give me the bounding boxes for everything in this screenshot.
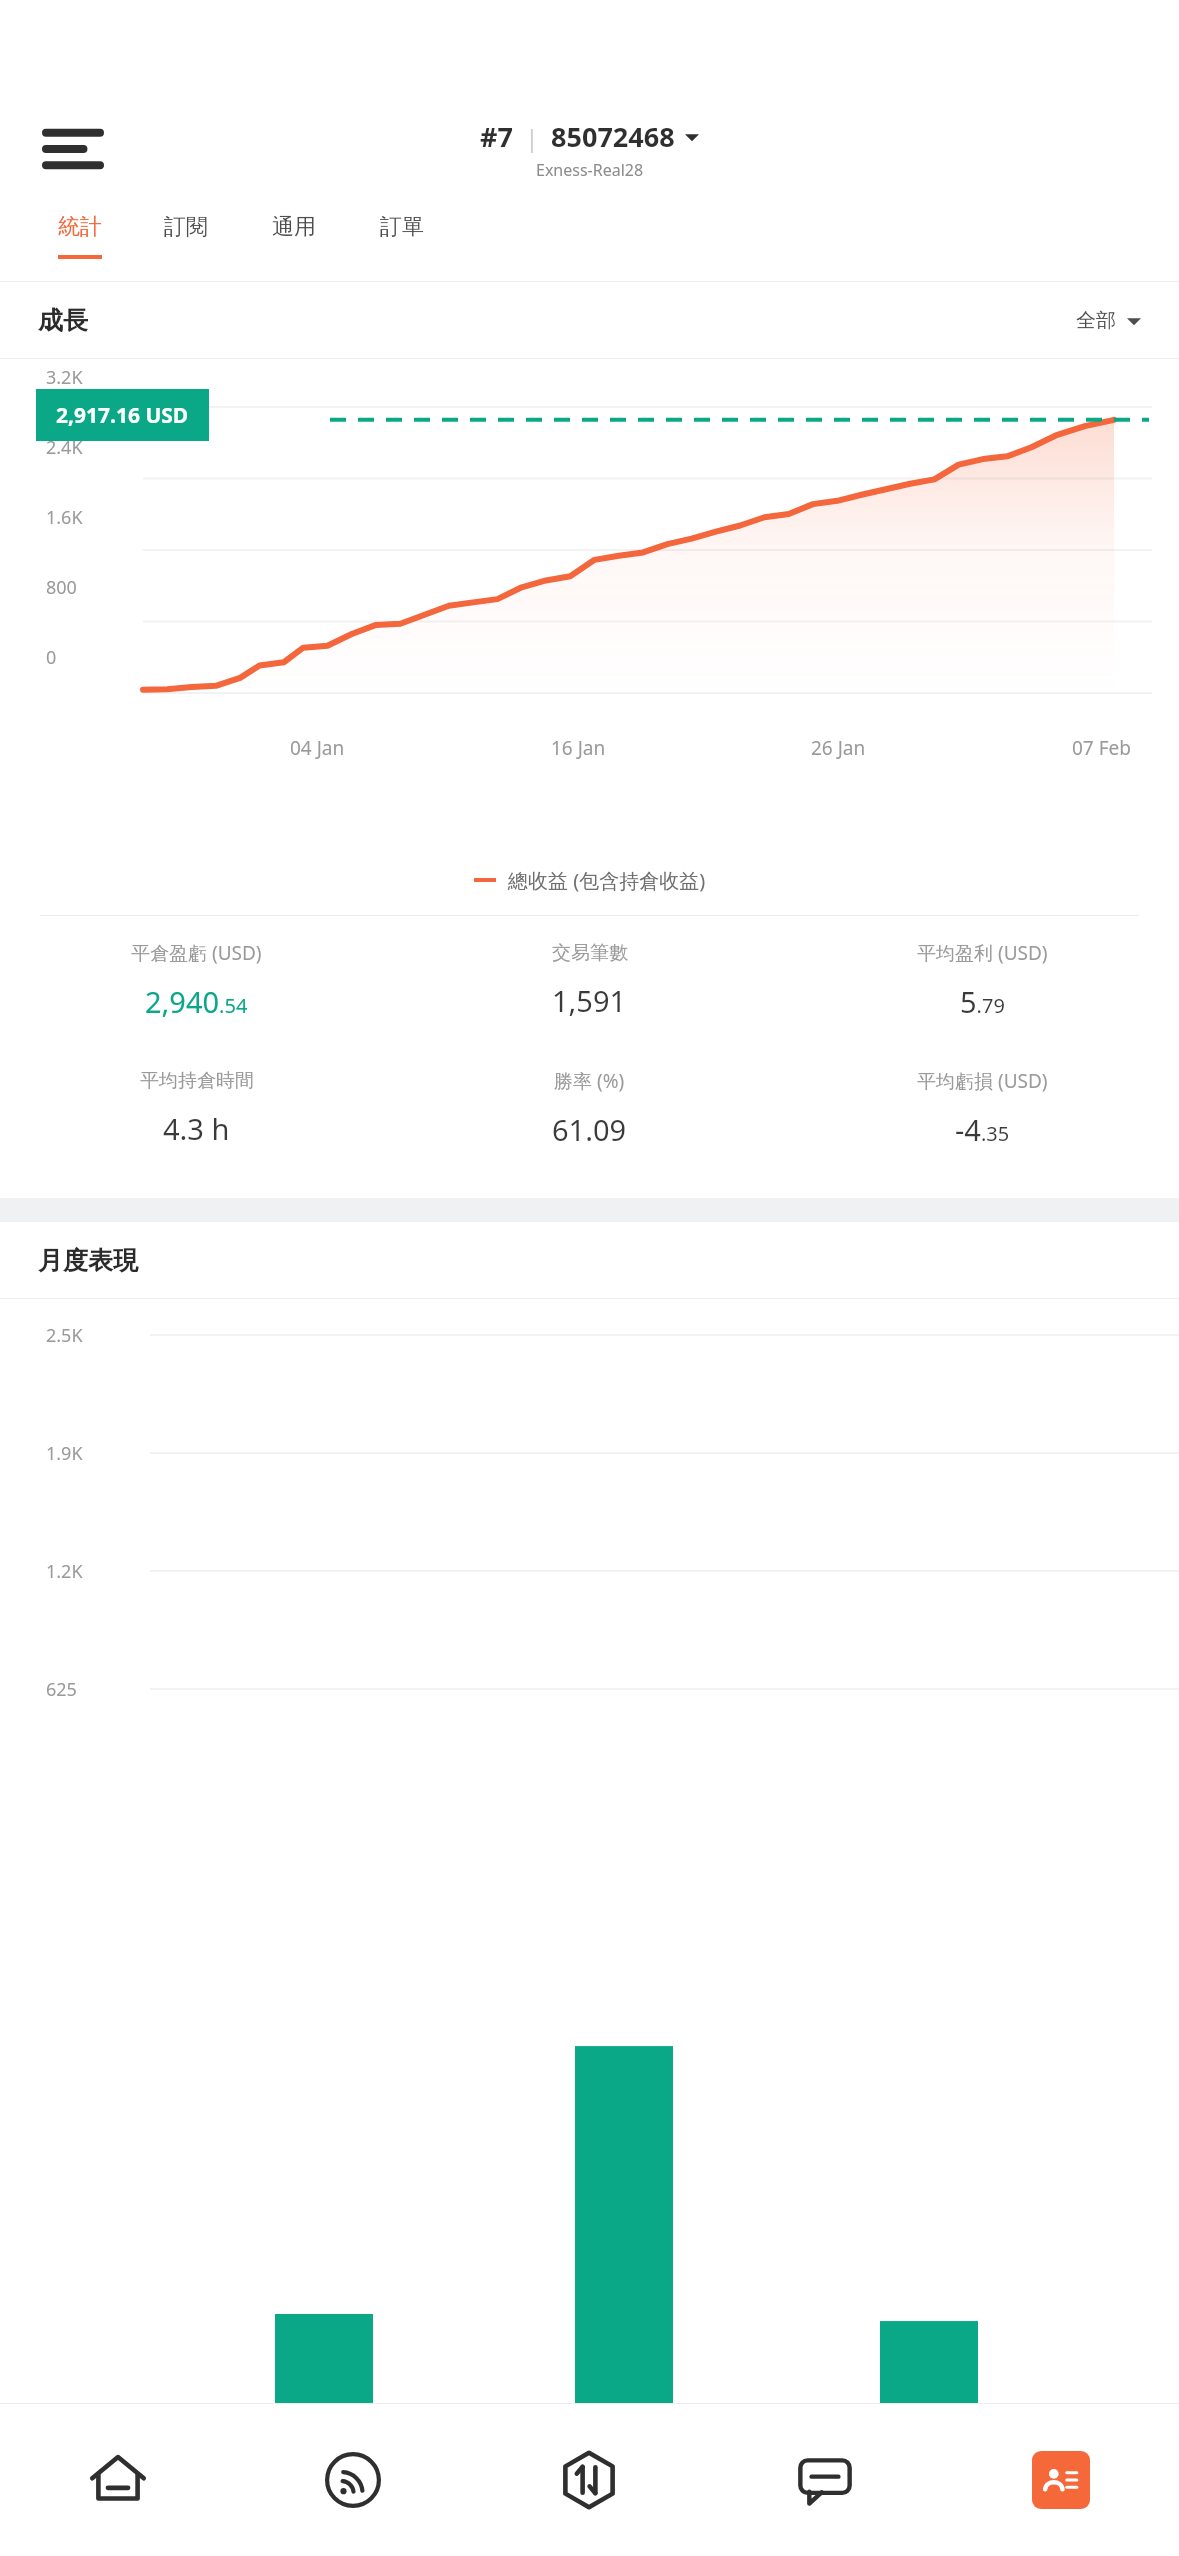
staticText: 總收益 (包含持倉收益) xyxy=(508,867,706,894)
staticText: 2,917.16 USD xyxy=(56,401,189,430)
staticText: 61.09 xyxy=(552,1110,627,1149)
staticText: 1,591 xyxy=(552,981,627,1020)
staticText: 2.4K xyxy=(46,435,83,460)
staticText: 交易筆數 xyxy=(552,941,628,965)
staticText: #7 | 85072468 xyxy=(480,118,675,155)
button[interactable]: Messages xyxy=(707,2404,943,2556)
button[interactable]: 通用 xyxy=(240,202,348,282)
staticText: 1.2K xyxy=(46,1559,83,1584)
staticText: 4.3 h xyxy=(163,1109,230,1148)
staticText: 800 xyxy=(46,575,77,600)
staticText: 通用 xyxy=(272,213,316,241)
button[interactable]: Signals xyxy=(235,2404,471,2556)
staticText: 0 xyxy=(46,645,57,670)
button[interactable]: Profile xyxy=(943,2404,1179,2556)
staticText: 統計 xyxy=(58,213,102,241)
staticText: 全部 xyxy=(1076,308,1116,333)
staticText: 1.9K xyxy=(46,1441,83,1466)
button[interactable]: 訂單 xyxy=(348,202,456,282)
staticText: 成長 xyxy=(38,305,88,336)
staticText: 625 xyxy=(46,1677,77,1702)
staticText: 16 Jan xyxy=(551,735,606,761)
staticText: 04 Jan xyxy=(290,735,345,761)
staticText: 勝率 (%) xyxy=(554,1068,625,1094)
staticText: 訂單 xyxy=(380,213,424,241)
staticText: Exness-Real28 xyxy=(536,159,644,181)
staticText: 2.5K xyxy=(46,1323,83,1348)
button[interactable]: Menu xyxy=(30,106,116,192)
button[interactable]: 訂閱 xyxy=(132,202,240,282)
button[interactable]: Trade xyxy=(471,2404,707,2556)
button[interactable]: 統計 xyxy=(28,202,132,282)
staticText: 平均持倉時間 xyxy=(140,1069,254,1093)
staticText: 平均虧損 (USD) xyxy=(917,1068,1048,1094)
button[interactable]: Home xyxy=(0,2404,235,2556)
staticText: 2,940.54 xyxy=(145,982,248,1021)
button[interactable]: 全部 xyxy=(1076,308,1141,333)
button[interactable]: #7 | 85072468 xyxy=(480,118,699,181)
staticText: 平倉盈虧 (USD) xyxy=(131,940,262,966)
staticText: 1.6K xyxy=(46,505,83,530)
staticText: 07 Feb xyxy=(1072,735,1131,761)
staticText: 訂閱 xyxy=(164,213,208,241)
staticText: 26 Jan xyxy=(811,735,866,761)
staticText: 5.79 xyxy=(960,982,1005,1021)
staticText: 平均盈利 (USD) xyxy=(917,940,1048,966)
staticText: 月度表現 xyxy=(38,1245,138,1276)
staticText: 3.2K xyxy=(46,365,83,390)
staticText: -4.35 xyxy=(955,1110,1010,1149)
